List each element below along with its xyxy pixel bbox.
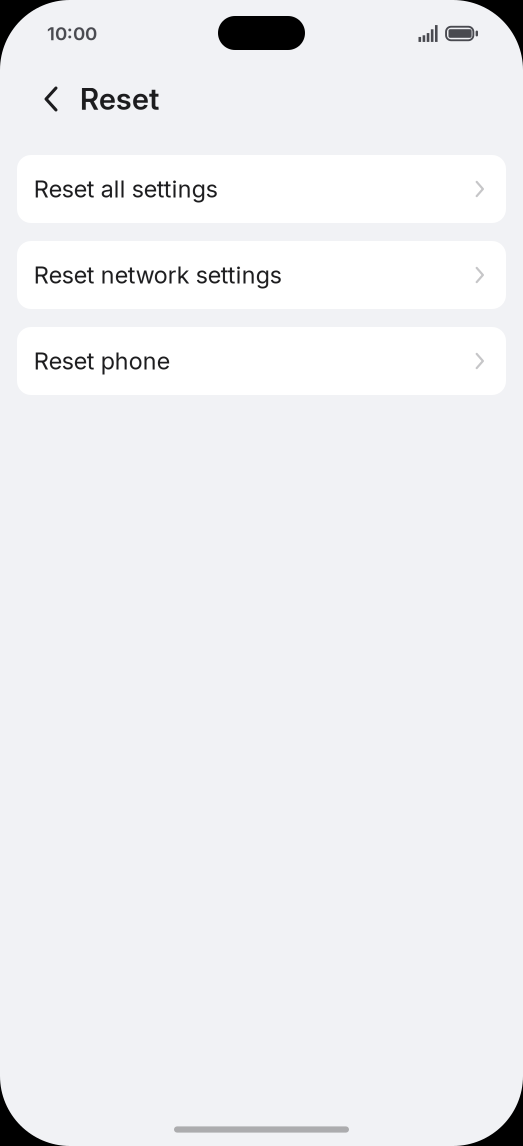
staticText: 10:00 <box>47 22 97 45</box>
button[interactable]: Reset network settings <box>17 241 506 309</box>
staticText: Reset <box>80 81 159 117</box>
button[interactable]: Reset phone <box>17 327 506 395</box>
button[interactable]: Reset all settings <box>17 155 506 223</box>
staticText: Reset all settings <box>34 175 218 203</box>
button[interactable]: Back <box>29 77 73 121</box>
staticText: Reset network settings <box>34 261 282 289</box>
staticText: Reset phone <box>34 347 170 375</box>
